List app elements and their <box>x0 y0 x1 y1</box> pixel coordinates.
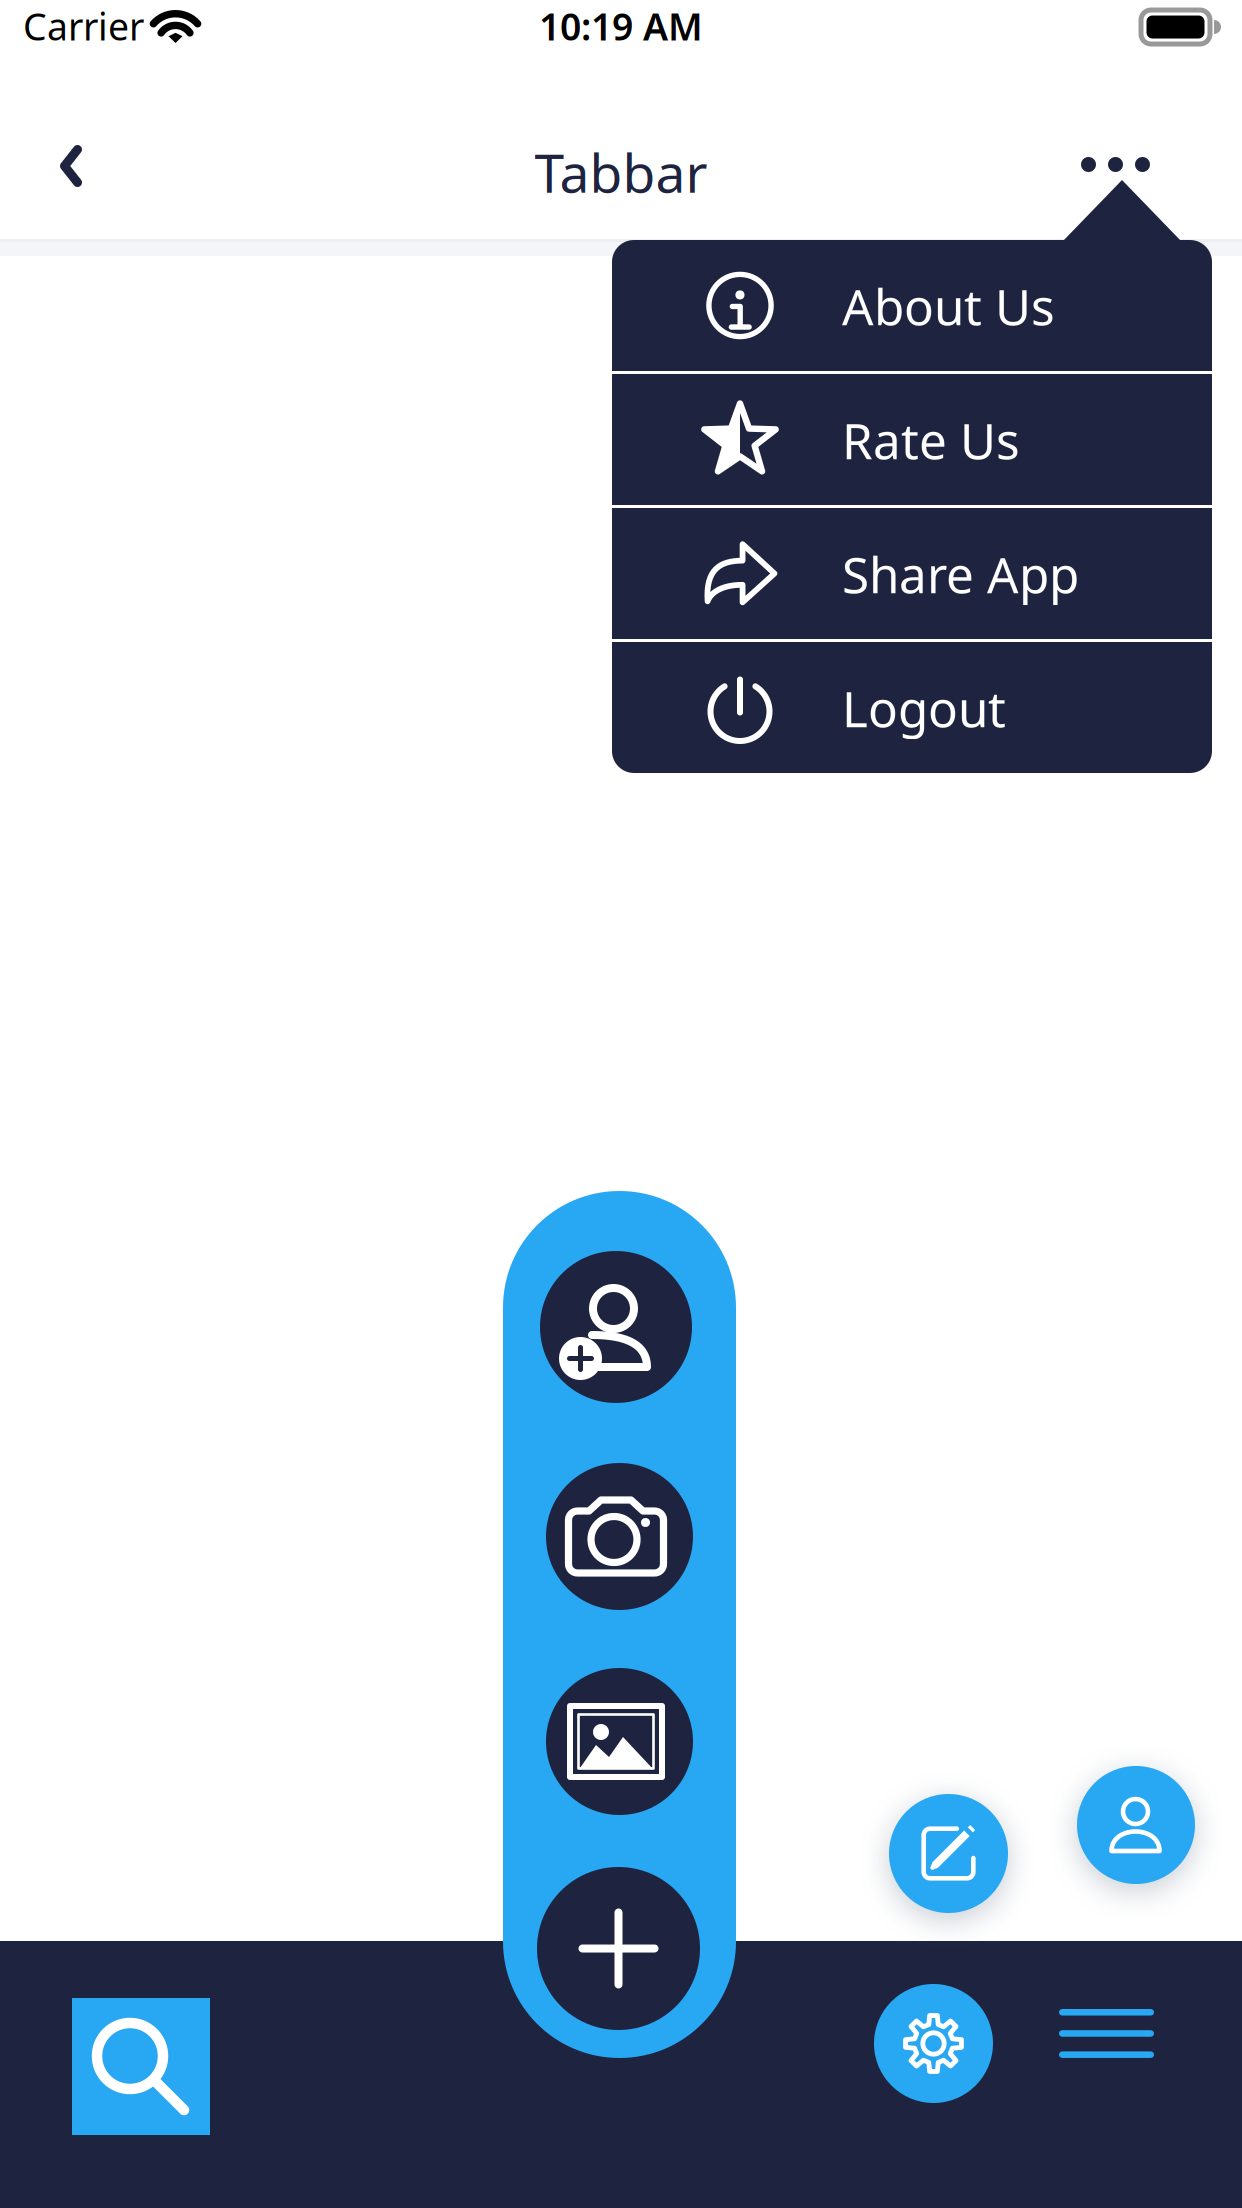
staticText: Tabbar <box>534 137 707 207</box>
button[interactable]: Rate Us <box>612 374 1212 505</box>
button[interactable]: Add <box>537 1867 700 2030</box>
button[interactable]: About Us <box>612 240 1212 371</box>
button[interactable]: Settings <box>874 1984 993 2103</box>
staticText: 10:19 AM <box>539 1 703 51</box>
staticText: Carrier <box>23 1 144 51</box>
button[interactable]: Logout <box>612 642 1212 773</box>
staticText: Logout <box>842 675 1006 741</box>
button[interactable]: Camera <box>546 1463 693 1610</box>
staticText: Share App <box>842 541 1079 607</box>
button[interactable]: Profile <box>1077 1766 1195 1884</box>
button[interactable]: More options <box>1047 109 1197 219</box>
button[interactable]: Compose <box>889 1794 1008 1913</box>
button[interactable]: Back <box>11 105 131 225</box>
staticText: Rate Us <box>842 407 1020 473</box>
button[interactable]: Menu <box>1044 1979 1169 2089</box>
button[interactable]: Share App <box>612 508 1212 639</box>
button[interactable]: Add friend <box>540 1251 692 1403</box>
button[interactable]: Photos <box>546 1668 693 1815</box>
staticText: About Us <box>842 273 1055 339</box>
button[interactable]: Search <box>72 1998 210 2135</box>
